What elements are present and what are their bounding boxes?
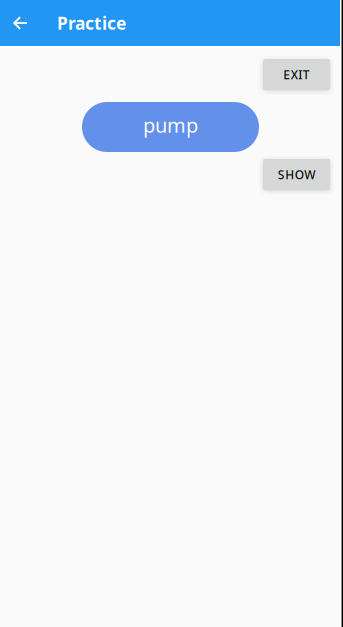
- button[interactable]: SHOW: [263, 159, 330, 190]
- button[interactable]: pump: [82, 102, 259, 152]
- staticText: Practice: [57, 11, 126, 34]
- staticText: EXIT: [283, 66, 310, 82]
- button[interactable]: EXIT: [263, 59, 330, 90]
- button[interactable]: Back: [0, 0, 41, 46]
- staticText: pump: [143, 112, 198, 138]
- staticText: SHOW: [278, 166, 315, 182]
